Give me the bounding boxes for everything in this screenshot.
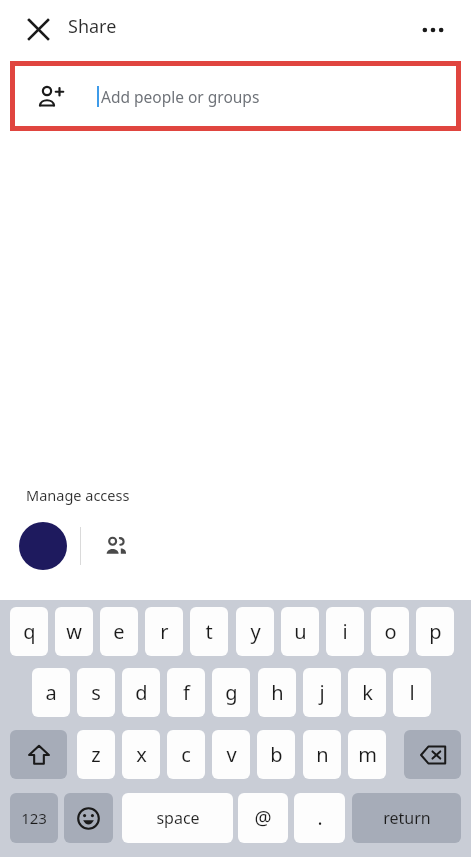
staticText: b: [270, 741, 283, 768]
staticText: s: [91, 679, 101, 706]
staticText: x: [136, 741, 147, 768]
button[interactable]: @: [238, 793, 288, 843]
staticText: f: [183, 679, 190, 706]
staticText: i: [342, 618, 348, 645]
button[interactable]: space: [122, 793, 233, 843]
staticText: e: [113, 618, 125, 645]
staticText: n: [316, 741, 329, 768]
staticText: r: [160, 618, 169, 645]
staticText: return: [383, 807, 431, 829]
staticText: a: [45, 679, 57, 706]
button[interactable]: i: [326, 607, 364, 656]
button[interactable]: q: [10, 607, 48, 656]
button[interactable]: 123: [10, 793, 58, 843]
staticText: l: [409, 679, 415, 706]
staticText: y: [250, 618, 261, 645]
staticText: c: [181, 741, 191, 768]
staticText: Manage access: [26, 485, 130, 505]
button[interactable]: Backspace: [404, 730, 461, 779]
button[interactable]: j: [303, 668, 341, 717]
button[interactable]: v: [212, 730, 250, 779]
button[interactable]: w: [55, 607, 93, 656]
button[interactable]: z: [77, 730, 115, 779]
button[interactable]: s: [77, 668, 115, 717]
button[interactable]: Account avatar: [19, 522, 67, 570]
staticText: u: [294, 618, 307, 645]
staticText: k: [362, 679, 373, 706]
button[interactable]: b: [257, 730, 295, 779]
button[interactable]: k: [348, 668, 386, 717]
staticText: @: [254, 805, 272, 831]
button[interactable]: x: [122, 730, 160, 779]
staticText: p: [429, 618, 442, 645]
button[interactable]: g: [212, 668, 250, 717]
staticText: Share: [68, 14, 117, 39]
staticText: o: [384, 618, 397, 645]
button[interactable]: o: [371, 607, 409, 656]
staticText: j: [319, 679, 325, 706]
staticText: .: [317, 805, 323, 831]
button[interactable]: More options: [414, 11, 452, 49]
button[interactable]: Emoji: [64, 793, 113, 843]
staticText: z: [91, 741, 101, 768]
button[interactable]: Shift: [10, 730, 67, 779]
button[interactable]: t: [190, 607, 228, 656]
button[interactable]: People with access: [94, 524, 138, 568]
button[interactable]: Add person: [15, 66, 456, 126]
staticText: d: [135, 679, 148, 706]
other: Add person: [38, 84, 63, 109]
staticText: q: [23, 618, 36, 645]
button[interactable]: e: [100, 607, 138, 656]
button[interactable]: d: [122, 668, 160, 717]
staticText: space: [156, 807, 200, 829]
button[interactable]: n: [303, 730, 341, 779]
button[interactable]: u: [281, 607, 319, 656]
staticText: Add people or groups: [101, 86, 260, 107]
button[interactable]: f: [167, 668, 205, 717]
button[interactable]: l: [393, 668, 431, 717]
button[interactable]: m: [348, 730, 386, 779]
staticText: w: [66, 618, 82, 645]
button[interactable]: return: [352, 793, 461, 843]
button[interactable]: Close: [20, 11, 56, 47]
staticText: h: [271, 679, 284, 706]
button[interactable]: c: [167, 730, 205, 779]
button[interactable]: h: [258, 668, 296, 717]
button[interactable]: .: [294, 793, 345, 843]
staticText: t: [205, 618, 213, 645]
button[interactable]: a: [32, 668, 70, 717]
staticText: v: [226, 741, 237, 768]
staticText: g: [225, 679, 238, 706]
staticText: m: [358, 741, 377, 768]
button[interactable]: r: [145, 607, 183, 656]
staticText: 123: [21, 808, 47, 828]
button[interactable]: y: [236, 607, 274, 656]
button[interactable]: p: [416, 607, 454, 656]
